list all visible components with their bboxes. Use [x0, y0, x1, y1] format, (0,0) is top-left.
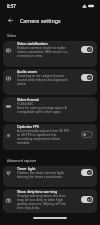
staticText: 6:57 [7, 3, 16, 9]
staticText: Best for saving storage space & compatib… [17, 106, 84, 114]
staticText: Advanced capture [7, 158, 37, 163]
staticText: Camera settings [20, 17, 61, 24]
button[interactable]: Timer light [3, 166, 97, 187]
staticText: Video format [17, 97, 39, 102]
staticText: Flashes the back camera light during the… [17, 171, 70, 179]
staticText: H.264/AVC [17, 102, 34, 106]
button[interactable]: Toggle setting [81, 196, 93, 203]
staticText: Display warning when the lens may be too… [17, 194, 70, 210]
button[interactable]: Toggle setting [81, 46, 93, 53]
button[interactable]: Show dirty lens warning [3, 189, 97, 213]
staticText: Zooming in on subject boosts sound and r… [17, 74, 70, 86]
button[interactable]: Optimize FPS [3, 124, 97, 150]
staticText: Timer light [17, 166, 36, 171]
button[interactable]: Video stabilization [3, 41, 97, 67]
staticText: Audio zoom [17, 69, 37, 74]
button[interactable]: Toggle setting [81, 131, 93, 138]
staticText: Reduce camera shake to make videos smoot… [17, 46, 70, 58]
staticText: Optimize FPS [17, 124, 39, 129]
button[interactable]: Toggle setting [81, 169, 93, 176]
button[interactable]: Toggle setting [81, 74, 93, 81]
button[interactable]: Video format [3, 97, 97, 122]
staticText: Show dirty lens warning [17, 189, 58, 194]
button[interactable]: Back [4, 14, 17, 27]
staticText: Video [7, 33, 17, 38]
button[interactable]: Audio zoom [3, 69, 97, 95]
staticText: Video stabilization [17, 41, 48, 46]
staticText: Automatically adjust from 60 FPS to 30 F… [17, 129, 70, 145]
